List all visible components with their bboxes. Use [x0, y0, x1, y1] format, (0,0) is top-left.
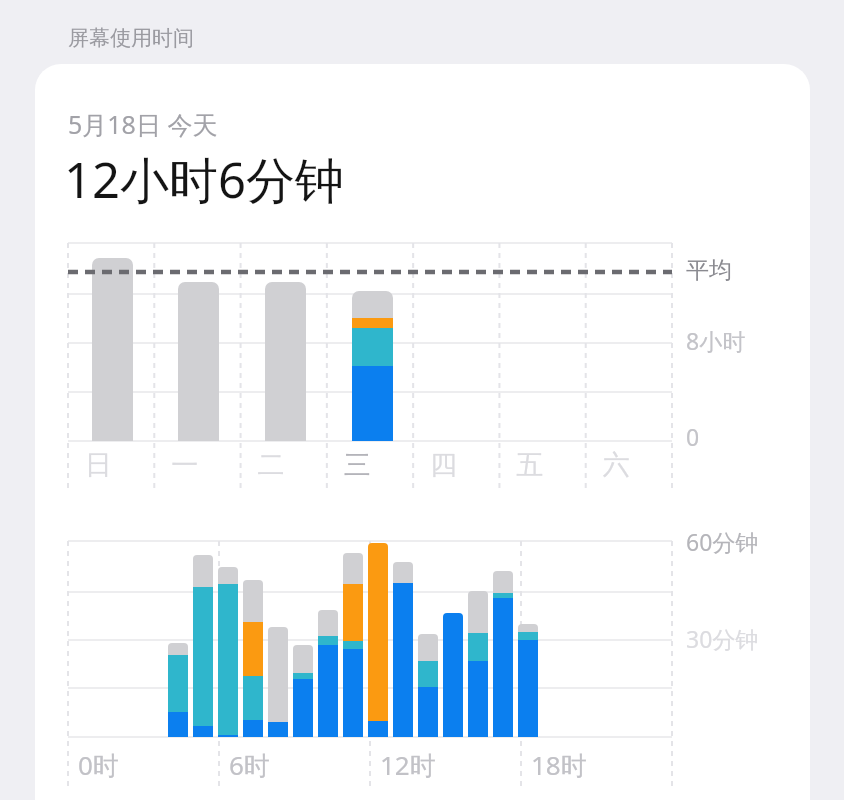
button[interactable]: Screen Time report card	[0, 0, 844, 800]
